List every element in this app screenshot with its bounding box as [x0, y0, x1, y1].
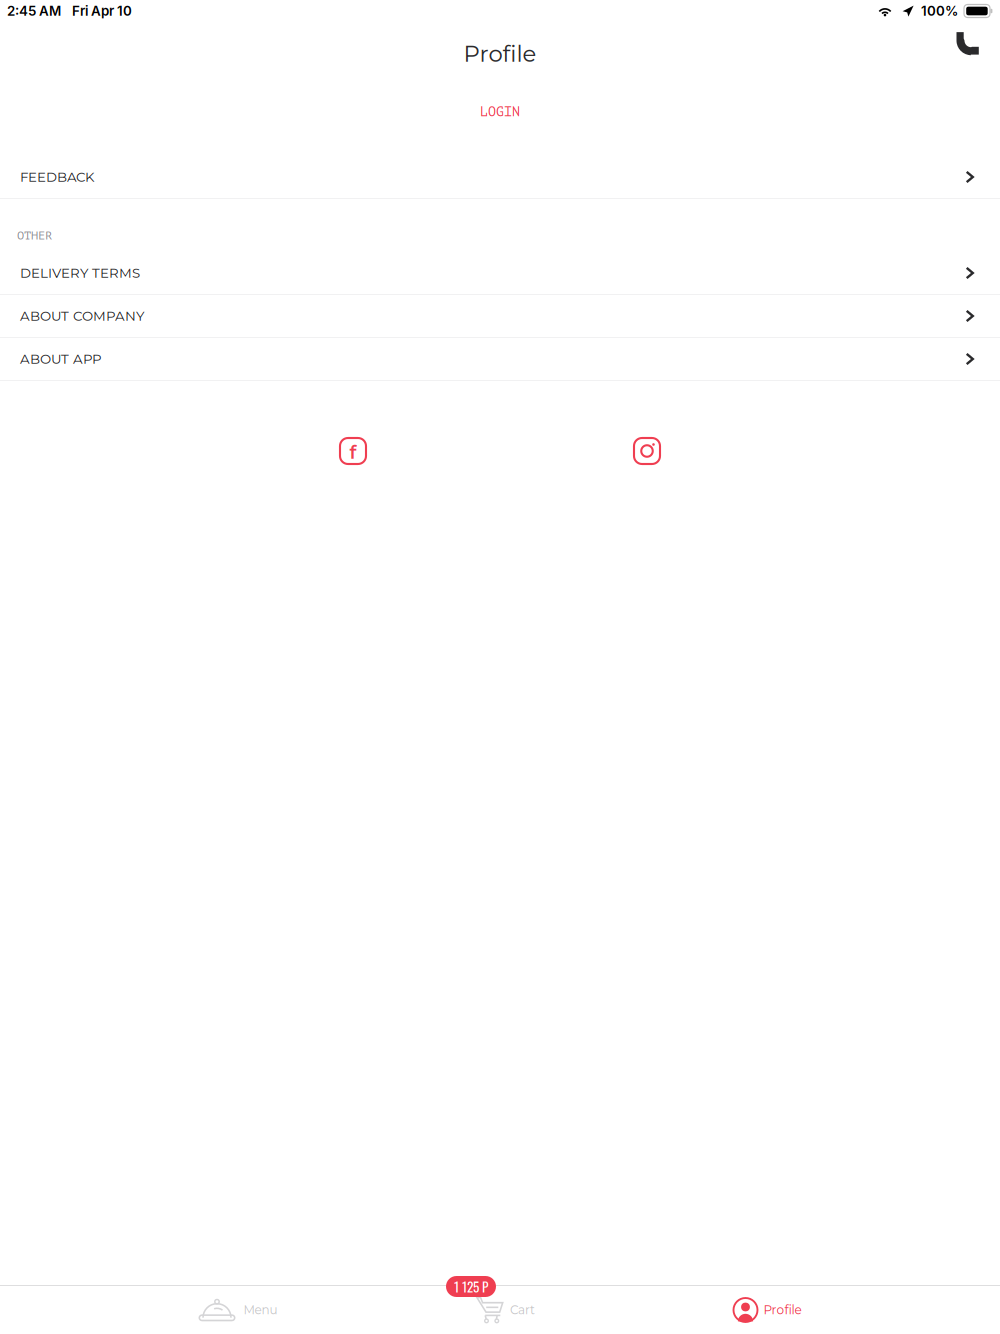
- staticText: ABOUT COMPANY: [20, 308, 144, 324]
- button[interactable]: Menu: [198, 1286, 277, 1334]
- button[interactable]: LOGIN: [0, 85, 1000, 139]
- staticText: f: [349, 441, 356, 463]
- staticText: OTHER: [17, 229, 52, 242]
- staticText: 2:45 AM: [7, 3, 61, 19]
- button[interactable]: ABOUT APP: [0, 338, 1000, 381]
- staticText: Cart: [510, 1303, 535, 1317]
- staticText: Profile: [763, 1303, 801, 1317]
- staticText: ABOUT APP: [20, 351, 102, 367]
- button[interactable]: DELIVERY TERMS: [0, 252, 1000, 295]
- staticText: Profile: [463, 40, 536, 67]
- staticText: FEEDBACK: [20, 169, 94, 185]
- staticText: 1 125 P: [454, 1277, 488, 1296]
- staticText: DELIVERY TERMS: [20, 265, 140, 281]
- button[interactable]: Cart total 1125 rubles: [446, 1276, 496, 1297]
- staticText: Fri Apr 10: [72, 3, 132, 19]
- staticText: 100%: [921, 3, 958, 19]
- staticText: LOGIN: [480, 104, 520, 119]
- button[interactable]: Cart: [476, 1286, 535, 1334]
- button[interactable]: ABOUT COMPANY: [0, 295, 1000, 338]
- button[interactable]: FEEDBACK: [0, 156, 1000, 199]
- button[interactable]: Profile: [733, 1286, 801, 1334]
- button[interactable]: Facebook: [329, 427, 377, 475]
- button[interactable]: Call: [940, 16, 994, 70]
- staticText: Menu: [243, 1303, 277, 1317]
- button[interactable]: Instagram: [623, 427, 671, 475]
